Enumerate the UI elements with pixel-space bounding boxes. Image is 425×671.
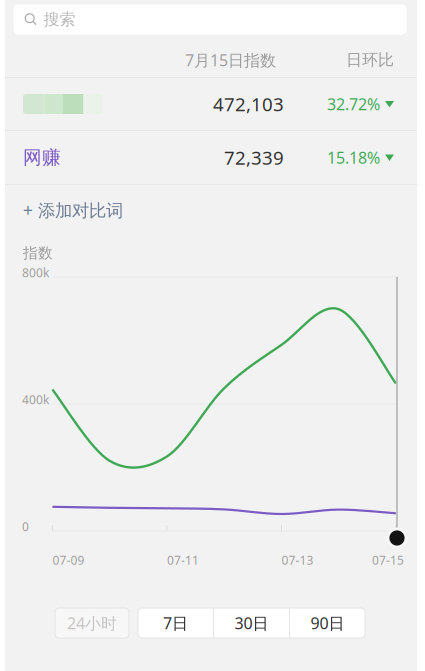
staticText: 指数	[23, 244, 53, 262]
staticText: 90日	[310, 612, 344, 634]
staticText: 07-13	[281, 552, 313, 568]
staticText: 15.18%	[327, 147, 380, 168]
staticText: 07-11	[167, 552, 199, 568]
staticText: 日环比	[346, 50, 394, 70]
button[interactable]: 90日	[290, 608, 365, 638]
staticText: 0	[22, 518, 29, 534]
staticText: 800k	[22, 264, 49, 280]
button[interactable]: 30日	[214, 608, 289, 638]
staticText: 07-15	[372, 552, 404, 568]
staticText: 72,339	[224, 145, 284, 170]
staticText: 32.72%	[327, 93, 380, 115]
button[interactable]: 472,103	[23, 78, 394, 130]
button[interactable]: 网赚	[23, 131, 394, 184]
staticText: 472,103	[213, 92, 284, 116]
staticText: 400k	[22, 391, 49, 407]
button[interactable]: 24小时	[55, 608, 129, 638]
staticText: 7月15日指数	[185, 49, 276, 71]
staticText: 24小时	[67, 612, 117, 634]
staticText: 7日	[163, 612, 188, 634]
staticText: 30日	[234, 612, 268, 634]
button[interactable]: 7日	[138, 608, 213, 638]
staticText: 网赚	[23, 146, 61, 169]
button[interactable]: + 添加对比词	[23, 190, 223, 230]
staticText: 07-09	[52, 552, 84, 568]
staticText: + 添加对比词	[23, 198, 123, 221]
staticText: 搜索	[43, 10, 75, 29]
button[interactable]: 搜索	[13, 4, 406, 34]
